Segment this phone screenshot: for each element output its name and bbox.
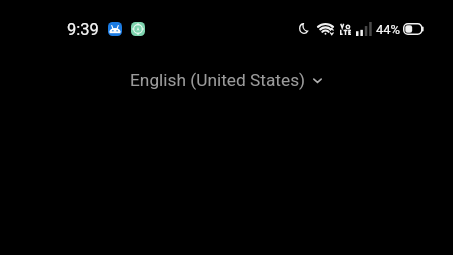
- button[interactable]: English (United States): [124, 67, 329, 93]
- other: Location in use: [131, 22, 145, 36]
- other: Do not disturb: [299, 23, 309, 34]
- staticText: 9:39: [67, 20, 99, 39]
- staticText: English (United States): [130, 70, 306, 90]
- other: Wi-Fi connected: [317, 23, 334, 35]
- other: Mobile signal: [356, 22, 372, 36]
- other: VoLTE: [340, 23, 351, 35]
- other: Battery 44 percent: [403, 23, 424, 35]
- staticText: 44%: [376, 22, 401, 37]
- other: Android system notification: [108, 22, 122, 36]
